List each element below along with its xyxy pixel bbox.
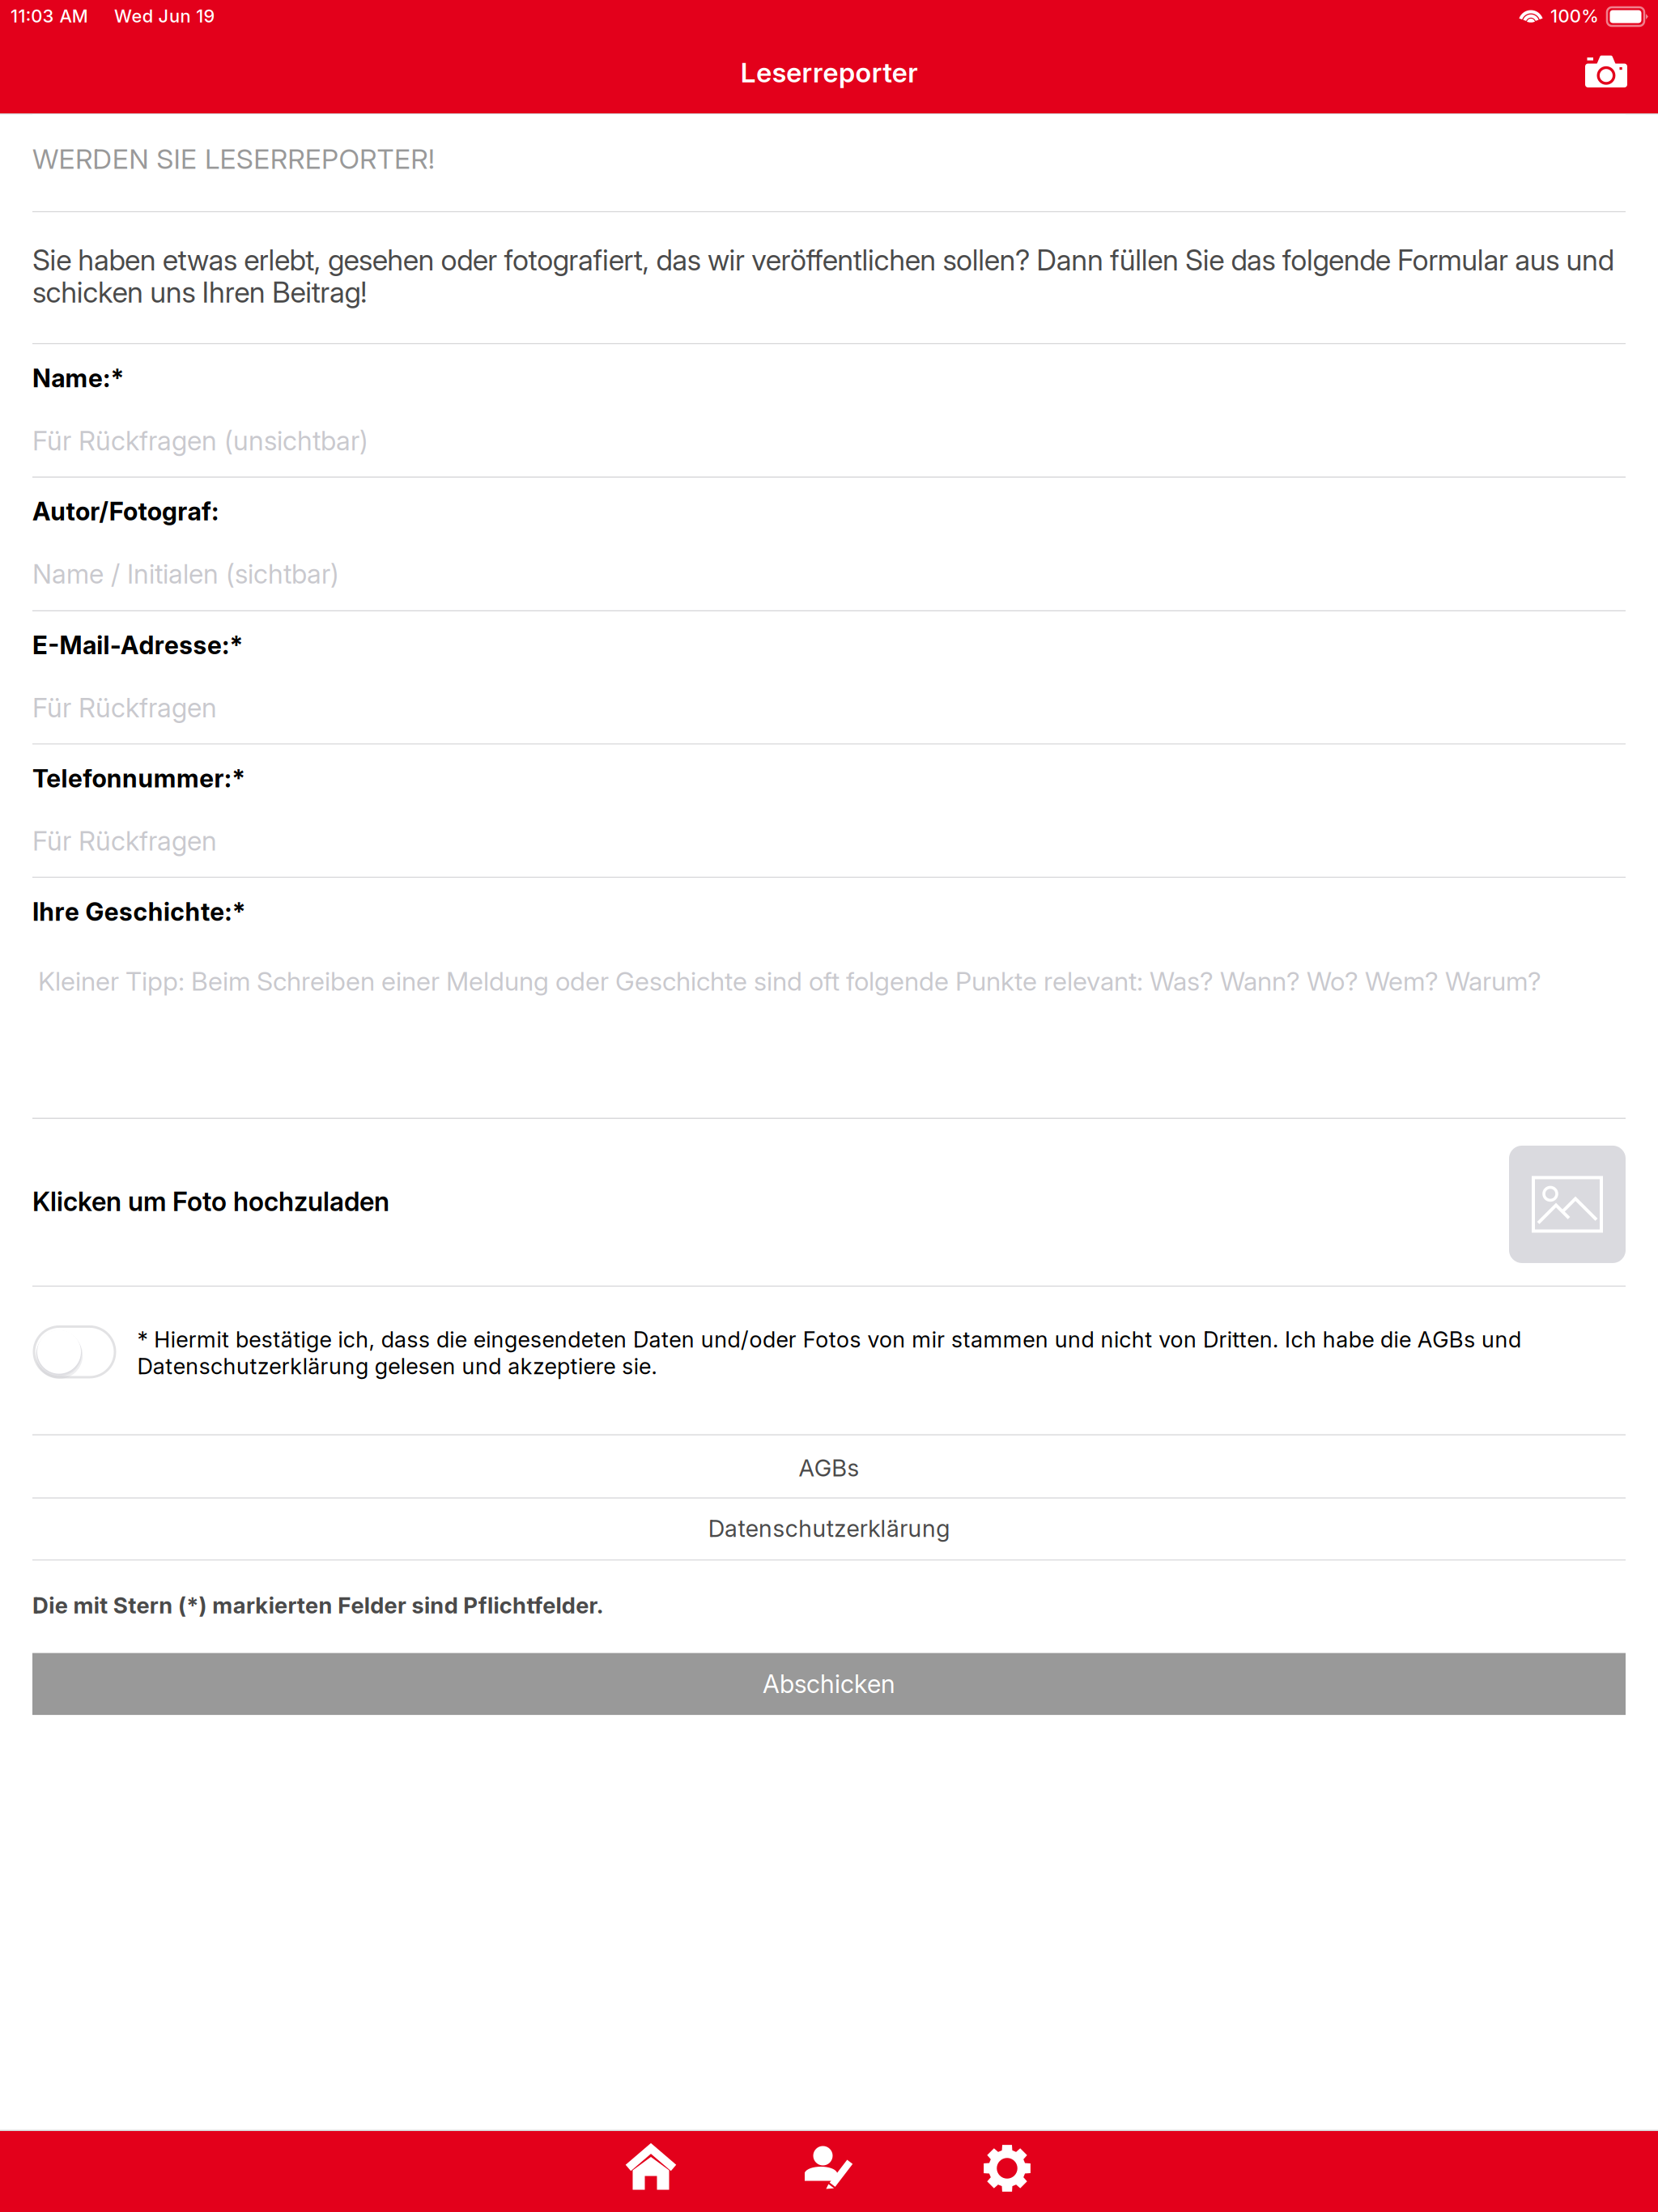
staticText: Für Rückfragen — [32, 692, 217, 724]
staticText: * Hiermit bestätige ich, dass die einges… — [137, 1326, 1521, 1380]
staticText: WERDEN SIE LESERREPORTER! — [32, 142, 435, 175]
button[interactable]: Startseite — [562, 2131, 740, 2212]
button[interactable]: Name:* — [32, 344, 1626, 478]
staticText: Sie haben etwas erlebt, gesehen oder fot… — [32, 243, 1614, 310]
button[interactable]: Einstellungen — [918, 2131, 1096, 2212]
staticText: Abschicken — [763, 1669, 895, 1699]
button[interactable]: Leserreporter — [740, 2131, 918, 2212]
staticText: E-Mail-Adresse:* — [32, 630, 243, 660]
staticText: Name:* — [32, 363, 124, 393]
staticText: Für Rückfragen (unsichtbar) — [32, 424, 368, 457]
button[interactable]: Ihre Geschichte:* — [32, 878, 1626, 1119]
staticText: Für Rückfragen — [32, 825, 217, 857]
staticText: Ihre Geschichte:* — [32, 897, 246, 927]
staticText: Leserreporter — [741, 56, 917, 89]
staticText: 100% — [1550, 5, 1598, 27]
button[interactable]: Autor/Fotograf: — [32, 478, 1626, 611]
button[interactable]: * Hiermit bestätige ich, dass die einges… — [32, 1287, 1626, 1435]
staticText: 11:03 AM — [11, 5, 88, 27]
button[interactable]: Foto aufnehmen — [1569, 36, 1643, 107]
staticText: Kleiner Tipp: Beim Schreiben einer Meldu… — [38, 965, 1541, 997]
staticText: Die mit Stern (*) markierten Felder sind… — [32, 1592, 603, 1619]
button[interactable]: Klicken um Foto hochzuladen — [32, 1119, 1626, 1287]
staticText: Datenschutzerklärung — [708, 1514, 950, 1542]
button[interactable]: Telefonnummer:* — [32, 745, 1626, 878]
staticText: Telefonnummer:* — [32, 763, 245, 793]
button[interactable]: E-Mail-Adresse:* — [32, 611, 1626, 745]
staticText: Autor/Fotograf: — [32, 496, 219, 527]
staticText: Klicken um Foto hochzuladen — [32, 1186, 389, 1217]
staticText: AGBs — [799, 1454, 859, 1482]
button[interactable]: Abschicken — [32, 1653, 1626, 1715]
staticText: Name / Initialen (sichtbar) — [32, 558, 339, 590]
staticText: Wed Jun 19 — [114, 5, 215, 27]
button[interactable]: AGBs — [32, 1435, 1626, 1499]
button[interactable]: Datenschutzerklärung — [32, 1499, 1626, 1561]
